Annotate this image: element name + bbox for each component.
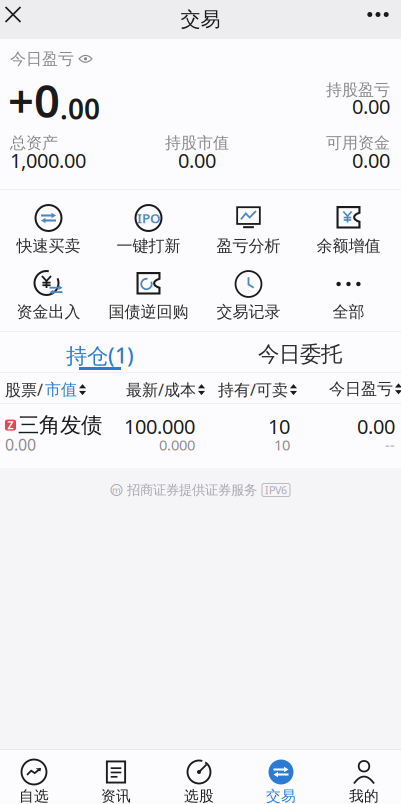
button[interactable]: 持有/可卖 (218, 379, 297, 400)
staticText: 0.00 (357, 413, 395, 440)
staticText: 余额增值 (316, 236, 380, 256)
button[interactable]: 自选 (0, 749, 73, 804)
staticText: 我的 (349, 787, 379, 804)
staticText: 持股盈亏 (326, 80, 390, 100)
staticText: 快速买卖 (16, 236, 80, 256)
staticText: 一键打新 (116, 236, 180, 256)
staticText: 0.000 (159, 435, 195, 454)
button[interactable]: 我的 (325, 749, 401, 804)
staticText: 总资产 (10, 133, 58, 153)
staticText: 选股 (184, 787, 214, 804)
staticText: 国债逆回购 (108, 302, 188, 322)
button[interactable]: 今日盈亏 (329, 379, 401, 399)
button[interactable]: 更多 (358, 0, 398, 34)
staticText: 交易记录 (216, 302, 280, 322)
staticText: 招商证券提供证券服务 (127, 482, 257, 498)
staticText: 今日盈亏 (329, 379, 393, 399)
staticText: 全部 (332, 302, 364, 322)
staticText: -- (385, 435, 395, 454)
staticText: 0.00 (178, 147, 216, 174)
button[interactable]: 选股 (160, 749, 238, 804)
staticText: 可用资金 (326, 133, 390, 153)
staticText: 今日委托 (258, 341, 342, 367)
staticText: 自选 (19, 787, 49, 804)
staticText: 最新/成本 (126, 379, 196, 400)
button[interactable]: 余额增值 (300, 203, 400, 269)
button[interactable]: 交易 (242, 749, 320, 804)
staticText: 10 (274, 435, 290, 454)
staticText: 持有/可卖 (218, 379, 288, 400)
button[interactable]: IPO (100, 203, 200, 269)
button[interactable]: 股票/ (5, 379, 86, 400)
staticText: 市值 (45, 380, 77, 399)
staticText: 10 (268, 413, 290, 440)
button[interactable]: 资讯 (77, 749, 155, 804)
button[interactable]: 关闭 (0, 0, 33, 34)
staticText: 持仓(1) (66, 341, 134, 369)
button[interactable]: 资金出入 (0, 269, 100, 335)
staticText: 股票/ (5, 379, 43, 400)
staticText: IPV6 (265, 483, 287, 497)
button[interactable]: 持仓(1) (0, 332, 200, 372)
staticText: .00 (60, 90, 100, 127)
button[interactable]: 全部 (300, 269, 400, 335)
button[interactable]: 快速买卖 (0, 203, 100, 269)
staticText: 1,000.00 (10, 147, 86, 174)
staticText: m (112, 484, 121, 496)
staticText: 100.000 (124, 413, 195, 440)
staticText: 资讯 (101, 787, 131, 804)
staticText: 0.00 (5, 434, 36, 455)
staticText: 交易 (266, 787, 296, 804)
staticText: 交易 (180, 7, 220, 32)
button[interactable]: Z (0, 404, 401, 460)
staticText: Z (7, 418, 13, 432)
staticText: 0.00 (352, 93, 390, 120)
staticText: 0.00 (352, 147, 390, 174)
staticText: 持股市值 (165, 133, 229, 153)
button[interactable]: 今日委托 (200, 332, 400, 372)
staticText: IPO (137, 209, 160, 227)
button[interactable]: 交易记录 (200, 269, 300, 335)
staticText: 三角发债 (18, 412, 102, 438)
button[interactable]: 盈亏分析 (200, 203, 300, 269)
staticText: +0 (8, 70, 60, 130)
button[interactable]: 最新/成本 (126, 379, 205, 400)
staticText: 资金出入 (16, 302, 80, 322)
staticText: 盈亏分析 (216, 236, 280, 256)
button[interactable]: 国债逆回购 (100, 269, 200, 335)
staticText: 今日盈亏 (10, 49, 74, 69)
